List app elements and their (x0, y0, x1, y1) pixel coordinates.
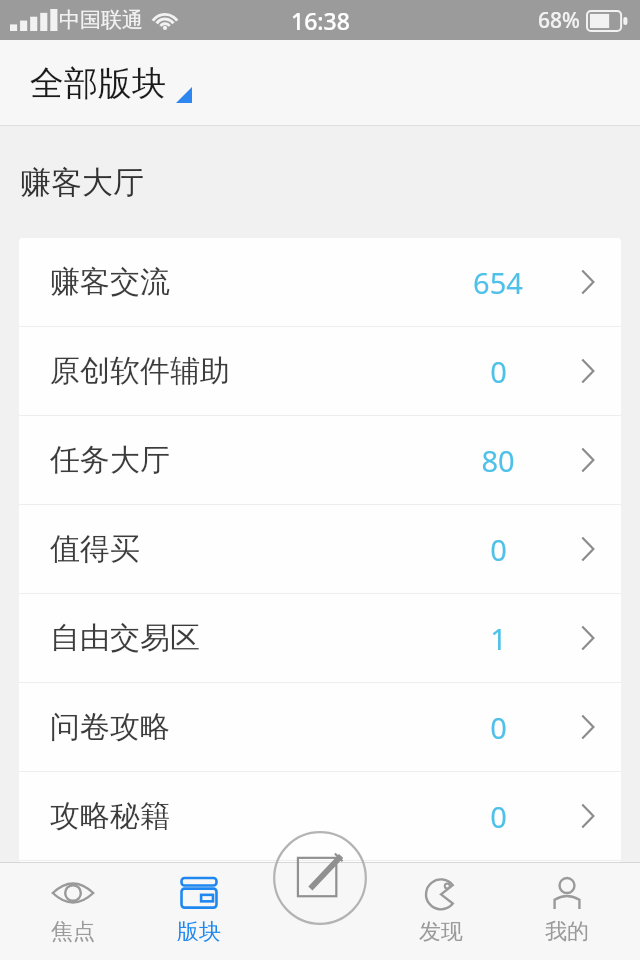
staticText: 版块 (177, 918, 221, 946)
button[interactable]: 值得买 (19, 505, 621, 593)
staticText: 焦点 (51, 918, 95, 946)
staticText: 任务大厅 (50, 441, 170, 479)
button[interactable]: 焦点 (19, 862, 127, 960)
staticText: 68% (538, 6, 580, 35)
staticText: 值得买 (50, 530, 140, 568)
staticText: 赚客交流 (50, 263, 170, 301)
staticText: 0 (490, 530, 507, 569)
staticText: 0 (490, 352, 507, 391)
staticText: 活动专区 (50, 886, 170, 924)
button[interactable]: 原创软件辅助 (19, 327, 621, 415)
staticText: 我的 (545, 918, 589, 946)
staticText: 16:38 (291, 5, 350, 36)
staticText: 原创软件辅助 (50, 352, 230, 390)
staticText: 中国联通 (59, 7, 143, 33)
staticText: 发现 (419, 918, 463, 946)
staticText: 654 (473, 263, 523, 302)
button[interactable]: 问卷攻略 (19, 683, 621, 771)
button[interactable]: 活动专区 (19, 861, 621, 949)
staticText: 1 (490, 619, 507, 658)
button[interactable]: 赚客交流 (19, 238, 621, 326)
staticText: 问卷攻略 (50, 708, 170, 746)
button[interactable]: 自由交易区 (19, 594, 621, 682)
button[interactable]: 全部版块 (30, 62, 192, 105)
staticText: 80 (481, 441, 515, 480)
staticText: 攻略秘籍 (50, 797, 170, 835)
staticText: 0 (490, 708, 507, 747)
staticText: 全部版块 (30, 62, 166, 105)
button[interactable]: 任务大厅 (19, 416, 621, 504)
staticText: 赚客大厅 (20, 163, 144, 202)
button[interactable]: 攻略秘籍 (19, 772, 621, 860)
button[interactable]: 发现 (387, 862, 495, 960)
button[interactable]: 我的 (513, 862, 621, 960)
button[interactable]: Compose new post (272, 830, 368, 926)
staticText: 自由交易区 (50, 619, 200, 657)
staticText: 0 (490, 797, 507, 836)
button[interactable]: 版块 (145, 862, 253, 960)
